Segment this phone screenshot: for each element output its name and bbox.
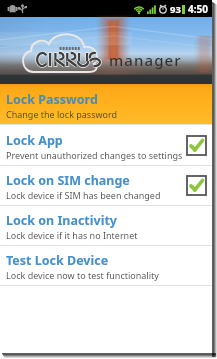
staticText: Lock on SIM change [6,172,130,189]
staticText: 93 [170,3,181,16]
staticText: Test Lock Device [6,252,109,269]
staticText: Lock device if it has no Internet [6,229,138,241]
staticText: 4:50 [188,2,208,16]
staticText: Change the lock password [6,108,118,120]
staticText: Prevent unauthorized changes to settings [6,149,183,161]
staticText: Lock device now to test functionality [6,269,159,281]
button[interactable]: Lock Password [0,84,212,124]
button[interactable]: Test Lock Device [0,246,212,285]
staticText: Lock Password [6,91,98,108]
button[interactable]: Toggle Lock App [187,125,206,165]
button[interactable]: Toggle Lock on SIM change [187,166,206,205]
button[interactable]: Lock on Inactivity [0,206,212,245]
staticText: Lock device if SIM has been changed [6,189,161,201]
staticText: manager [109,50,182,70]
button[interactable]: Lock App [0,125,212,165]
staticText: Lock on Inactivity [6,212,117,229]
button[interactable]: Lock on SIM change [0,166,212,205]
staticText: Lock App [6,132,63,149]
